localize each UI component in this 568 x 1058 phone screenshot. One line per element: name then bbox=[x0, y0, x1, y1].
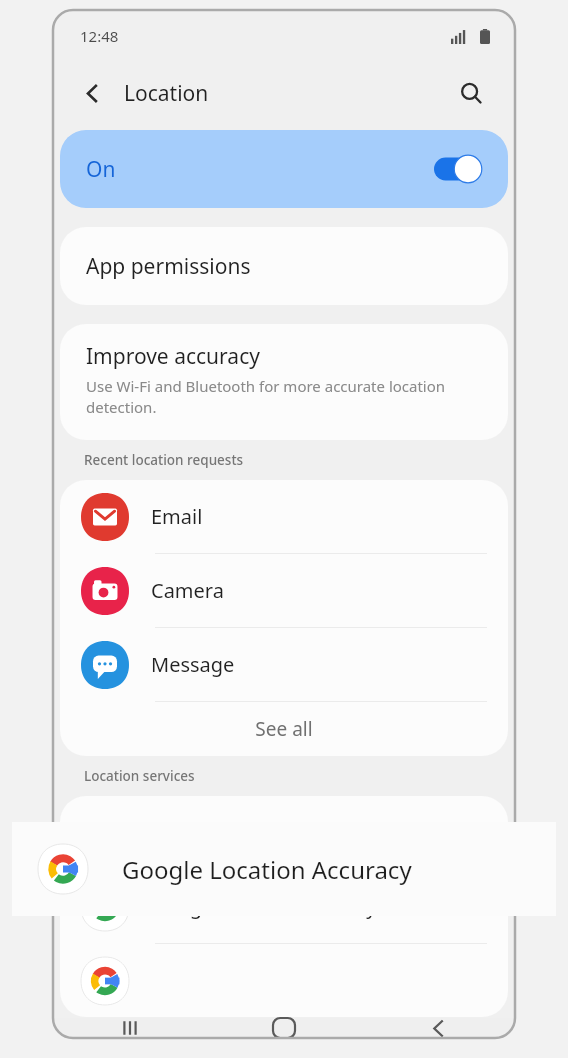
button[interactable]: Email bbox=[60, 480, 508, 554]
staticText: See all bbox=[255, 716, 313, 742]
button[interactable]: On bbox=[60, 130, 508, 208]
staticText: Google Location History bbox=[151, 893, 377, 920]
button[interactable]: Google Location Accuracy bbox=[12, 822, 556, 916]
staticText: Recent location requests bbox=[84, 451, 244, 469]
staticText: Camera bbox=[151, 577, 224, 604]
button[interactable]: App permissions bbox=[60, 227, 508, 305]
button[interactable]: Improve accuracy bbox=[60, 324, 508, 440]
staticText: Improve accuracy bbox=[86, 342, 260, 371]
button[interactable]: See all bbox=[60, 702, 508, 756]
staticText: Use Wi-Fi and Bluetooth for more accurat… bbox=[86, 376, 476, 418]
button[interactable]: Back bbox=[361, 1018, 515, 1038]
staticText: App permissions bbox=[86, 252, 251, 281]
button[interactable]: Camera bbox=[60, 554, 508, 628]
button[interactable]: Message bbox=[60, 628, 508, 702]
staticText: Message bbox=[151, 651, 235, 678]
staticText: Location bbox=[124, 79, 209, 108]
button[interactable]: Search bbox=[453, 75, 489, 111]
staticText: 12:48 bbox=[80, 26, 119, 46]
button[interactable]: Recent apps bbox=[53, 1018, 207, 1038]
staticText: Google Location Accuracy bbox=[122, 853, 412, 886]
button[interactable]: Home bbox=[207, 1018, 361, 1038]
staticText: Email bbox=[151, 503, 203, 530]
button[interactable]: Back bbox=[75, 76, 109, 110]
button[interactable] bbox=[60, 944, 508, 1017]
button[interactable]: Google Location History bbox=[60, 870, 508, 944]
staticText: Location services bbox=[84, 767, 195, 785]
staticText: On bbox=[86, 155, 116, 184]
